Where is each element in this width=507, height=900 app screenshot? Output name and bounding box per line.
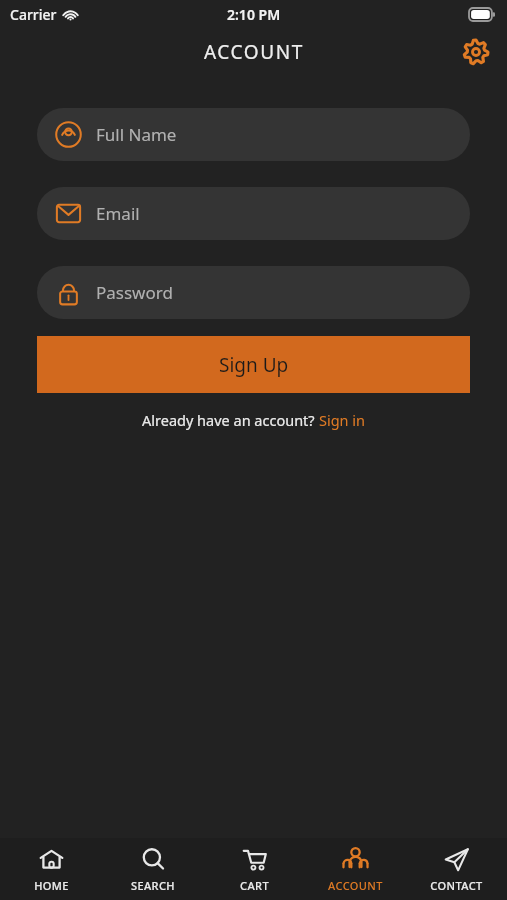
button[interactable]: Full Name <box>37 108 470 161</box>
button[interactable]: Settings <box>459 35 493 69</box>
staticText: CONTACT <box>430 878 483 893</box>
staticText: Carrier <box>10 5 57 24</box>
button[interactable]: SEARCH <box>102 838 204 900</box>
button[interactable]: Email <box>37 187 470 240</box>
staticText: Email <box>96 202 140 225</box>
staticText: 2:10 PM <box>227 5 281 24</box>
staticText: ACCOUNT <box>328 878 383 893</box>
button[interactable]: ACCOUNT <box>305 838 406 900</box>
staticText: ACCOUNT <box>204 39 304 65</box>
staticText: SEARCH <box>131 878 175 893</box>
button[interactable]: HOME <box>0 838 102 900</box>
staticText: Full Name <box>96 123 177 146</box>
staticText: Password <box>96 281 173 304</box>
staticText: CART <box>240 878 269 893</box>
button[interactable]: CART <box>204 838 305 900</box>
button[interactable]: Sign in <box>319 410 366 430</box>
button[interactable]: Sign Up <box>37 336 470 393</box>
button[interactable]: CONTACT <box>406 838 507 900</box>
staticText: Sign Up <box>219 352 289 378</box>
staticText: HOME <box>34 878 69 893</box>
staticText: Sign in <box>319 410 366 430</box>
staticText: Already have an account? <box>142 410 319 430</box>
button[interactable]: Password <box>37 266 470 319</box>
